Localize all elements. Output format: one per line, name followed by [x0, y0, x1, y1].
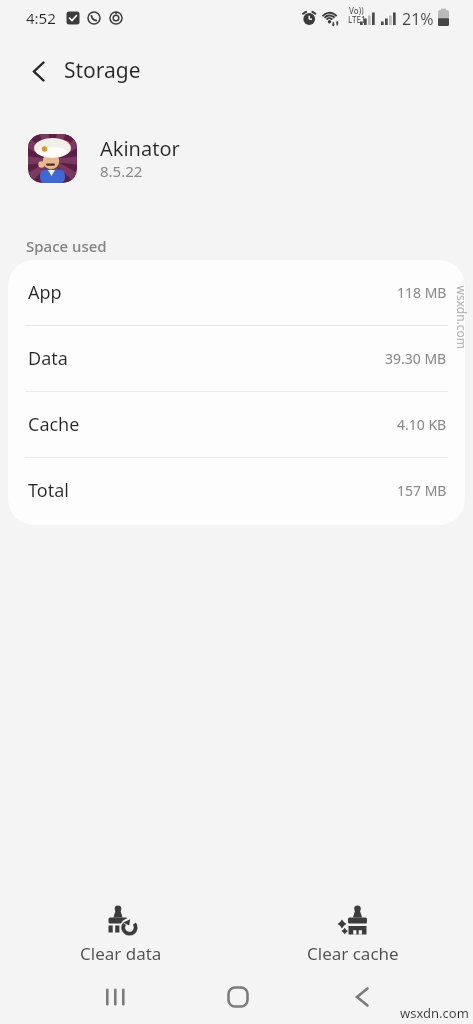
- button[interactable]: [227, 986, 249, 1008]
- staticText: 4.10 KB: [397, 415, 447, 434]
- staticText: Vo)): [349, 5, 364, 16]
- staticText: Space used: [26, 236, 107, 256]
- staticText: Cache: [28, 412, 80, 437]
- staticText: Clear data: [80, 942, 162, 965]
- button[interactable]: Clear data: [56, 903, 186, 965]
- button[interactable]: [0, 48, 473, 94]
- staticText: LTE1: [348, 14, 366, 25]
- button[interactable]: [28, 134, 77, 183]
- button[interactable]: [353, 987, 371, 1007]
- staticText: Total: [28, 478, 69, 503]
- button[interactable]: Clear cache: [288, 903, 418, 965]
- staticText: App: [28, 280, 62, 305]
- staticText: Akinator: [100, 135, 180, 162]
- staticText: 4:52: [26, 8, 56, 28]
- staticText: Data: [28, 346, 68, 371]
- button[interactable]: Total: [8, 458, 465, 523]
- staticText: 118 MB: [397, 283, 447, 302]
- staticText: Clear cache: [307, 942, 399, 965]
- button[interactable]: Cache: [8, 392, 465, 457]
- staticText: 157 MB: [397, 481, 447, 500]
- staticText: Storage: [64, 56, 141, 85]
- button[interactable]: App: [8, 260, 465, 325]
- button[interactable]: Data: [8, 326, 465, 391]
- staticText: 21%: [402, 8, 434, 30]
- button[interactable]: [104, 987, 128, 1007]
- staticText: 8.5.22: [100, 161, 143, 181]
- staticText: wsxdn.com: [400, 1004, 469, 1022]
- staticText: 39.30 MB: [385, 349, 447, 368]
- staticText: wsxdn.com: [454, 285, 469, 349]
